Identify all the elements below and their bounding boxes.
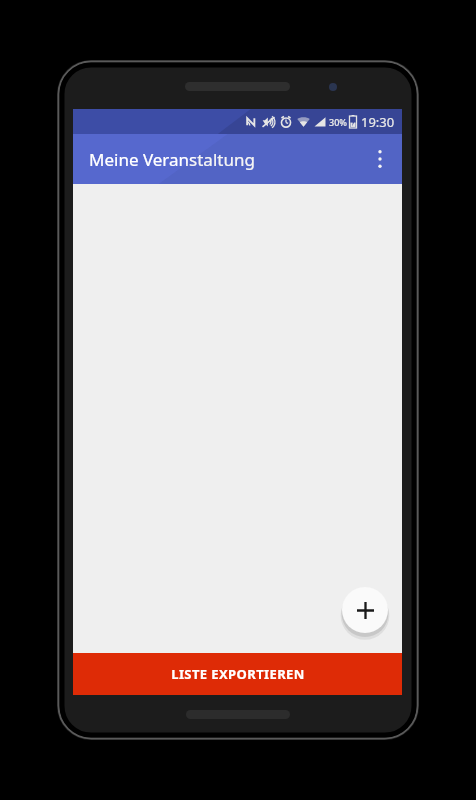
button[interactable]: More options bbox=[358, 137, 402, 181]
staticText: Meine Veranstaltung bbox=[89, 148, 255, 171]
staticText: LISTE EXPORTIEREN bbox=[171, 665, 305, 683]
staticText: 19:30 bbox=[361, 113, 395, 131]
button[interactable]: Add bbox=[342, 587, 388, 633]
staticText: 30% bbox=[329, 116, 347, 128]
button[interactable]: LISTE EXPORTIEREN bbox=[73, 653, 402, 695]
